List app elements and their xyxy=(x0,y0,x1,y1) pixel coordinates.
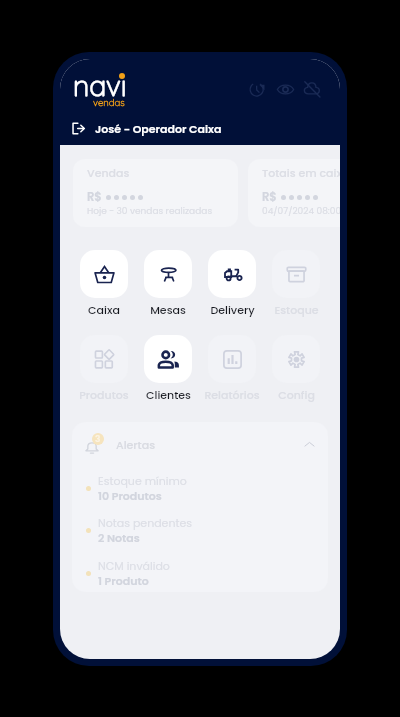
staticText: NCM inválido xyxy=(98,558,170,573)
button[interactable]: Estoque xyxy=(264,250,328,317)
staticText: Alertas xyxy=(116,437,156,452)
staticText: Estoque xyxy=(274,302,319,317)
button[interactable]: Offline xyxy=(299,76,325,102)
button[interactable]: José - Operador Caixa xyxy=(70,116,224,140)
staticText: vendas xyxy=(93,96,125,108)
button[interactable]: Vendas xyxy=(73,159,238,227)
staticText: Notas pendentes xyxy=(98,515,193,530)
staticText: 2 Notas xyxy=(98,530,140,545)
button[interactable]: Estoque mínimo xyxy=(86,471,314,505)
button[interactable]: Config xyxy=(264,335,328,402)
staticText: Vendas xyxy=(87,165,130,180)
button[interactable]: Produtos xyxy=(72,335,136,402)
staticText: 04/07/2024 08:00 xyxy=(262,205,340,218)
button[interactable]: 3 xyxy=(72,422,328,466)
staticText: Caixa xyxy=(88,302,120,317)
staticText: Produtos xyxy=(79,387,129,402)
staticText: 10 Produtos xyxy=(98,488,162,503)
staticText: Mesas xyxy=(150,302,186,317)
button[interactable]: Mesas xyxy=(136,250,200,317)
button[interactable]: Totais em caixa xyxy=(248,159,340,227)
staticText: Delivery xyxy=(210,302,255,317)
staticText: Estoque mínimo xyxy=(98,473,187,488)
staticText: Clientes xyxy=(146,387,191,402)
staticText: 3 xyxy=(95,433,101,445)
button[interactable]: Atualizar xyxy=(244,76,270,102)
staticText: navı xyxy=(73,67,127,103)
button[interactable]: Clientes xyxy=(136,335,200,402)
staticText: Totais em caixa xyxy=(262,165,340,180)
button[interactable]: Notas pendentes xyxy=(86,513,314,547)
staticText: Config xyxy=(278,387,315,402)
button[interactable]: Caixa xyxy=(72,250,136,317)
button[interactable]: NCM inválido xyxy=(86,556,314,590)
button[interactable]: Mostrar valores xyxy=(272,76,298,102)
button[interactable]: Delivery xyxy=(200,250,264,317)
staticText: Relatórios xyxy=(204,387,260,402)
staticText: R$ xyxy=(87,189,102,205)
button[interactable]: Relatórios xyxy=(200,335,264,402)
staticText: José - Operador Caixa xyxy=(95,121,222,136)
staticText: 1 Produto xyxy=(98,573,149,588)
staticText: Hoje - 30 vendas realizadas xyxy=(87,205,213,218)
staticText: R$ xyxy=(262,189,277,205)
